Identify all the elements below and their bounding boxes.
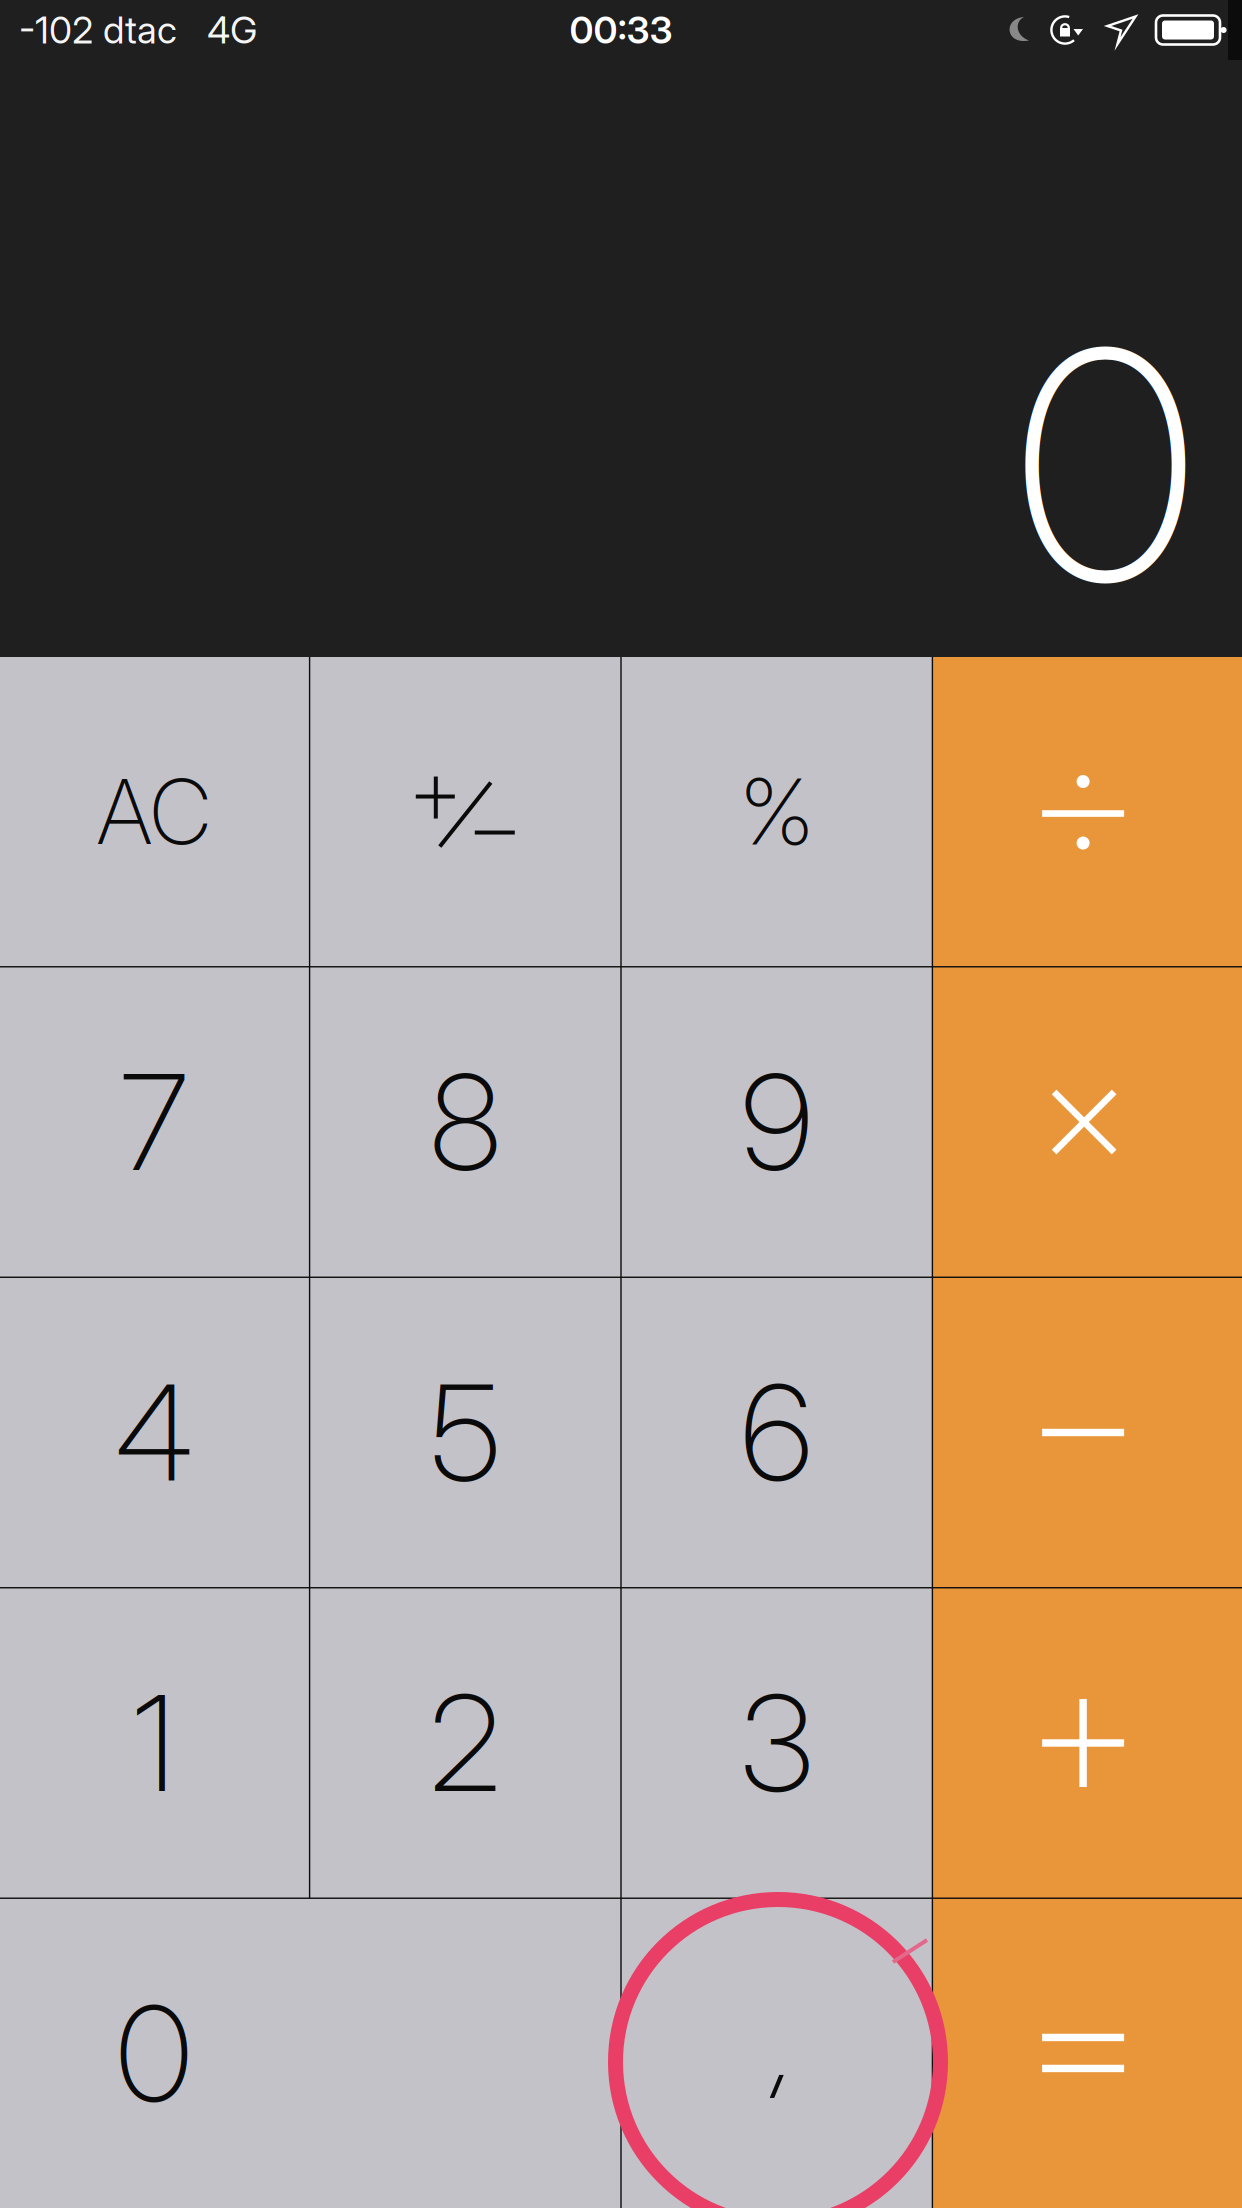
- button[interactable]: plus or minus: [310, 657, 620, 966]
- button[interactable]: decimal separator: [622, 1899, 932, 2208]
- button[interactable]: equals: [933, 1899, 1242, 2208]
- staticText: 00:33: [569, 7, 672, 53]
- button[interactable]: %: [622, 657, 932, 966]
- staticText: AC: [97, 757, 211, 866]
- button[interactable]: 8: [310, 967, 620, 1277]
- staticText: 4: [115, 1353, 193, 1512]
- staticText: 2: [429, 1663, 501, 1823]
- button[interactable]: 0: [0, 1899, 620, 2208]
- button[interactable]: multiply: [933, 967, 1242, 1277]
- staticText: 8: [430, 1042, 501, 1202]
- staticText: 0: [116, 1974, 192, 2133]
- button[interactable]: 1: [0, 1588, 309, 1897]
- staticText: 5: [430, 1353, 500, 1512]
- staticText: %: [740, 757, 813, 866]
- button[interactable]: 7: [0, 967, 309, 1277]
- button[interactable]: divide: [933, 657, 1242, 966]
- staticText: -102 dtac 4G: [19, 7, 257, 53]
- staticText: 1: [132, 1663, 175, 1823]
- staticText: 3: [740, 1663, 813, 1823]
- button[interactable]: 5: [310, 1278, 620, 1587]
- button[interactable]: 4: [0, 1278, 309, 1587]
- button[interactable]: 3: [622, 1588, 932, 1897]
- button[interactable]: minus: [933, 1278, 1242, 1587]
- button[interactable]: AC: [0, 657, 309, 966]
- staticText: 0: [1014, 273, 1196, 657]
- staticText: 6: [741, 1353, 813, 1512]
- button[interactable]: 9: [622, 967, 932, 1277]
- button[interactable]: plus: [933, 1588, 1242, 1897]
- button[interactable]: 2: [310, 1588, 620, 1897]
- button[interactable]: 6: [622, 1278, 932, 1587]
- staticText: 9: [741, 1042, 813, 1202]
- staticText: 7: [120, 1042, 188, 1202]
